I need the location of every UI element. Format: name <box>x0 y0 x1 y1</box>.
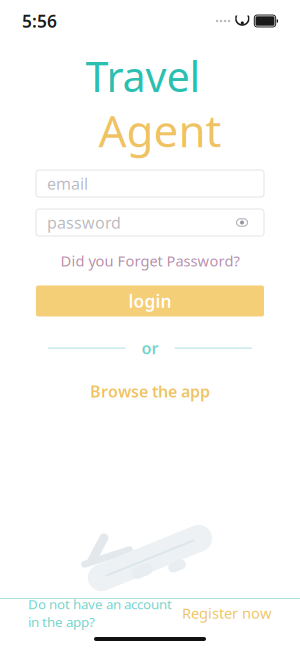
button[interactable]: Show password <box>231 211 253 233</box>
staticText: or <box>141 337 158 359</box>
staticText: Agent <box>98 100 221 160</box>
staticText: login <box>128 289 171 312</box>
staticText: password <box>47 212 121 233</box>
staticText: Browse the app <box>90 381 210 402</box>
staticText: Travel <box>85 48 200 104</box>
button[interactable]: Do not have an account in the app? <box>28 589 172 637</box>
button[interactable]: login <box>36 285 264 316</box>
staticText: 5:56 <box>22 9 57 32</box>
staticText: email <box>47 173 88 194</box>
button[interactable]: Register now <box>182 597 272 629</box>
button[interactable]: Did you Forget Password? <box>50 246 249 275</box>
staticText: Do not have an account in the app? <box>28 595 172 631</box>
staticText: Register now <box>182 603 272 623</box>
staticText: Did you Forget Password? <box>60 251 239 270</box>
button[interactable]: Browse the app <box>78 375 222 408</box>
